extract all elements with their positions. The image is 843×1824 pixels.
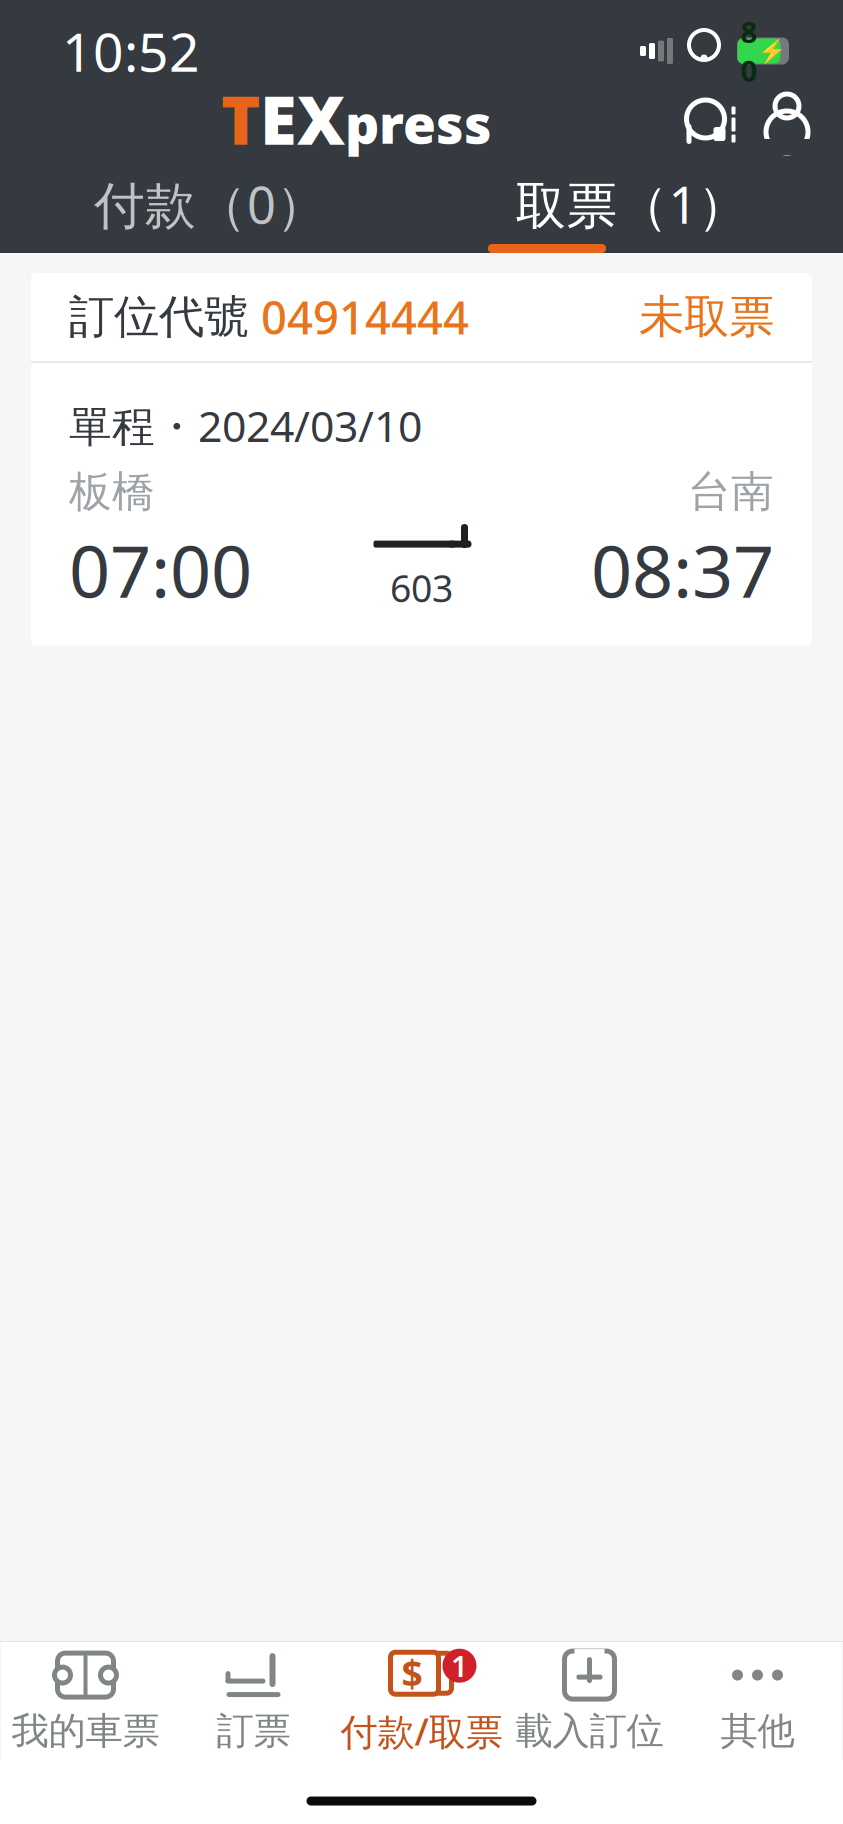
staticText: 1 — [451, 1646, 468, 1685]
button[interactable]: 付款（0） — [0, 166, 421, 242]
staticText: T — [221, 75, 260, 163]
button[interactable]: 訂位代號 — [31, 273, 812, 646]
button[interactable]: 我的車票 — [1, 1646, 169, 1756]
staticText: 603 — [390, 563, 453, 613]
staticText: 付款（0） — [94, 170, 327, 238]
staticText: press — [345, 88, 492, 158]
staticText: 付款/取票 — [340, 1706, 502, 1756]
button[interactable]: 訂票 — [169, 1646, 337, 1756]
button[interactable]: 載入訂位 — [505, 1646, 673, 1756]
staticText: 80 — [740, 12, 757, 90]
staticText: $ — [401, 1648, 422, 1698]
staticText: 訂位代號 — [69, 289, 249, 345]
staticText: 訂票 — [216, 1708, 290, 1754]
button[interactable]: $ — [337, 1646, 505, 1756]
staticText: 其他 — [720, 1708, 794, 1754]
staticText: 取票（1） — [515, 170, 748, 238]
staticText: EX — [260, 75, 345, 163]
staticText: 07:00 — [69, 522, 252, 618]
staticText: 台南 — [688, 466, 774, 518]
staticText: 08:37 — [591, 522, 774, 618]
button[interactable]: 語音服務 — [673, 81, 749, 157]
staticText: ⚡ — [757, 38, 785, 64]
staticText: 04914444 — [249, 287, 469, 347]
button[interactable]: 取票（1） — [421, 166, 843, 242]
button[interactable]: 其他 — [673, 1646, 841, 1756]
staticText: 10:52 — [62, 16, 200, 86]
staticText: 單程・2024/03/10 — [69, 397, 422, 454]
staticText: 板橋 — [69, 466, 155, 518]
staticText: 載入訂位 — [515, 1708, 663, 1754]
button[interactable]: 會員 — [749, 81, 825, 157]
staticText: 我的車票 — [11, 1708, 159, 1754]
staticText: 未取票 — [639, 289, 774, 345]
